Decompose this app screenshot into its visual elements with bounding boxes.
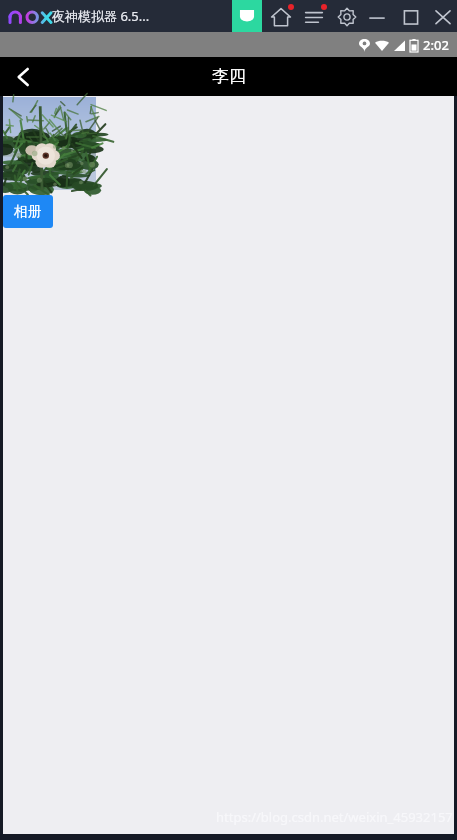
staticText: 2:02	[423, 36, 449, 54]
button[interactable]: Settings	[336, 6, 358, 28]
button[interactable]: Close	[432, 6, 454, 28]
staticText: 相册	[14, 203, 42, 221]
button[interactable]: Photo	[3, 97, 96, 190]
button[interactable]: 相册	[3, 195, 53, 228]
button[interactable]: Menu	[303, 6, 325, 28]
staticText: https://blog.csdn.net/weixin_45932157	[216, 808, 453, 826]
staticText: 李四	[212, 66, 246, 87]
button[interactable]: Minimize	[366, 6, 388, 28]
staticText: 夜神模拟器 6.5...	[52, 7, 150, 25]
button[interactable]: Back	[0, 57, 46, 96]
button[interactable]: App store	[232, 0, 262, 32]
button[interactable]: Maximize	[400, 6, 422, 28]
button[interactable]: Themes	[270, 6, 292, 28]
